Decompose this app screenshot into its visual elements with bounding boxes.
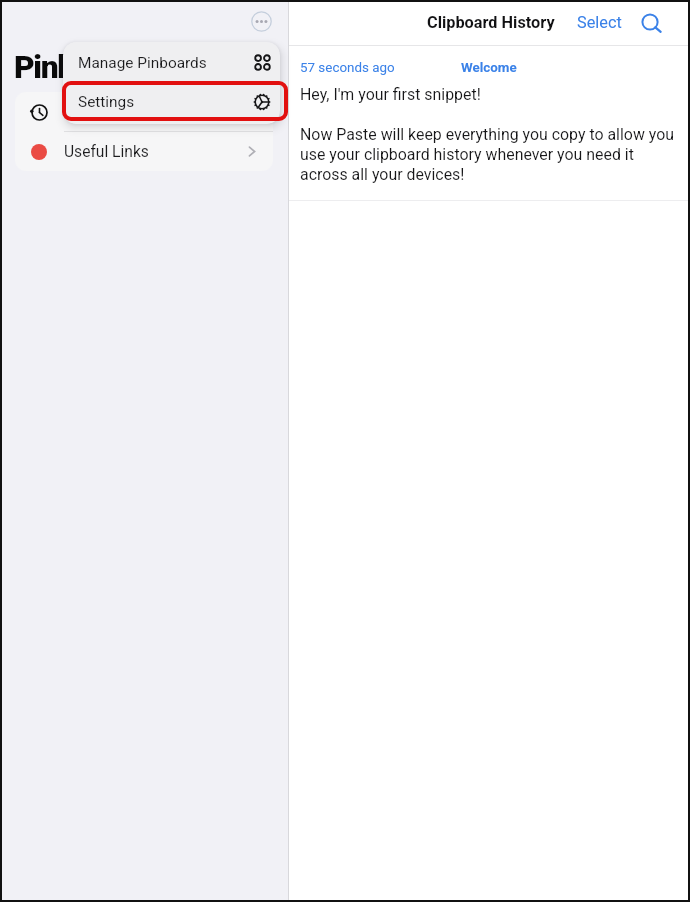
button[interactable]: Search (641, 13, 663, 35)
staticText: Select (577, 13, 622, 32)
staticText: Clipboard History (64, 103, 185, 121)
staticText: Now Paste will keep everything you copy … (300, 125, 675, 183)
staticText: Welcome (461, 60, 517, 76)
button[interactable]: Manage Pinboards (63, 43, 280, 82)
button[interactable]: Settings (63, 83, 280, 121)
button[interactable]: Clipboard History (15, 92, 273, 131)
staticText: Hey, I'm your first snippet! (300, 85, 481, 104)
staticText: Settings (78, 93, 135, 111)
staticText: Pinboards (14, 48, 148, 85)
button[interactable]: Useful Links (15, 132, 273, 171)
button[interactable]: More options (251, 11, 272, 32)
button[interactable]: Select (577, 13, 622, 32)
staticText: Useful Links (64, 143, 149, 161)
staticText: Manage Pinboards (78, 54, 207, 72)
staticText: 57 seconds ago (300, 60, 395, 76)
staticText: Clipboard History (427, 13, 555, 32)
